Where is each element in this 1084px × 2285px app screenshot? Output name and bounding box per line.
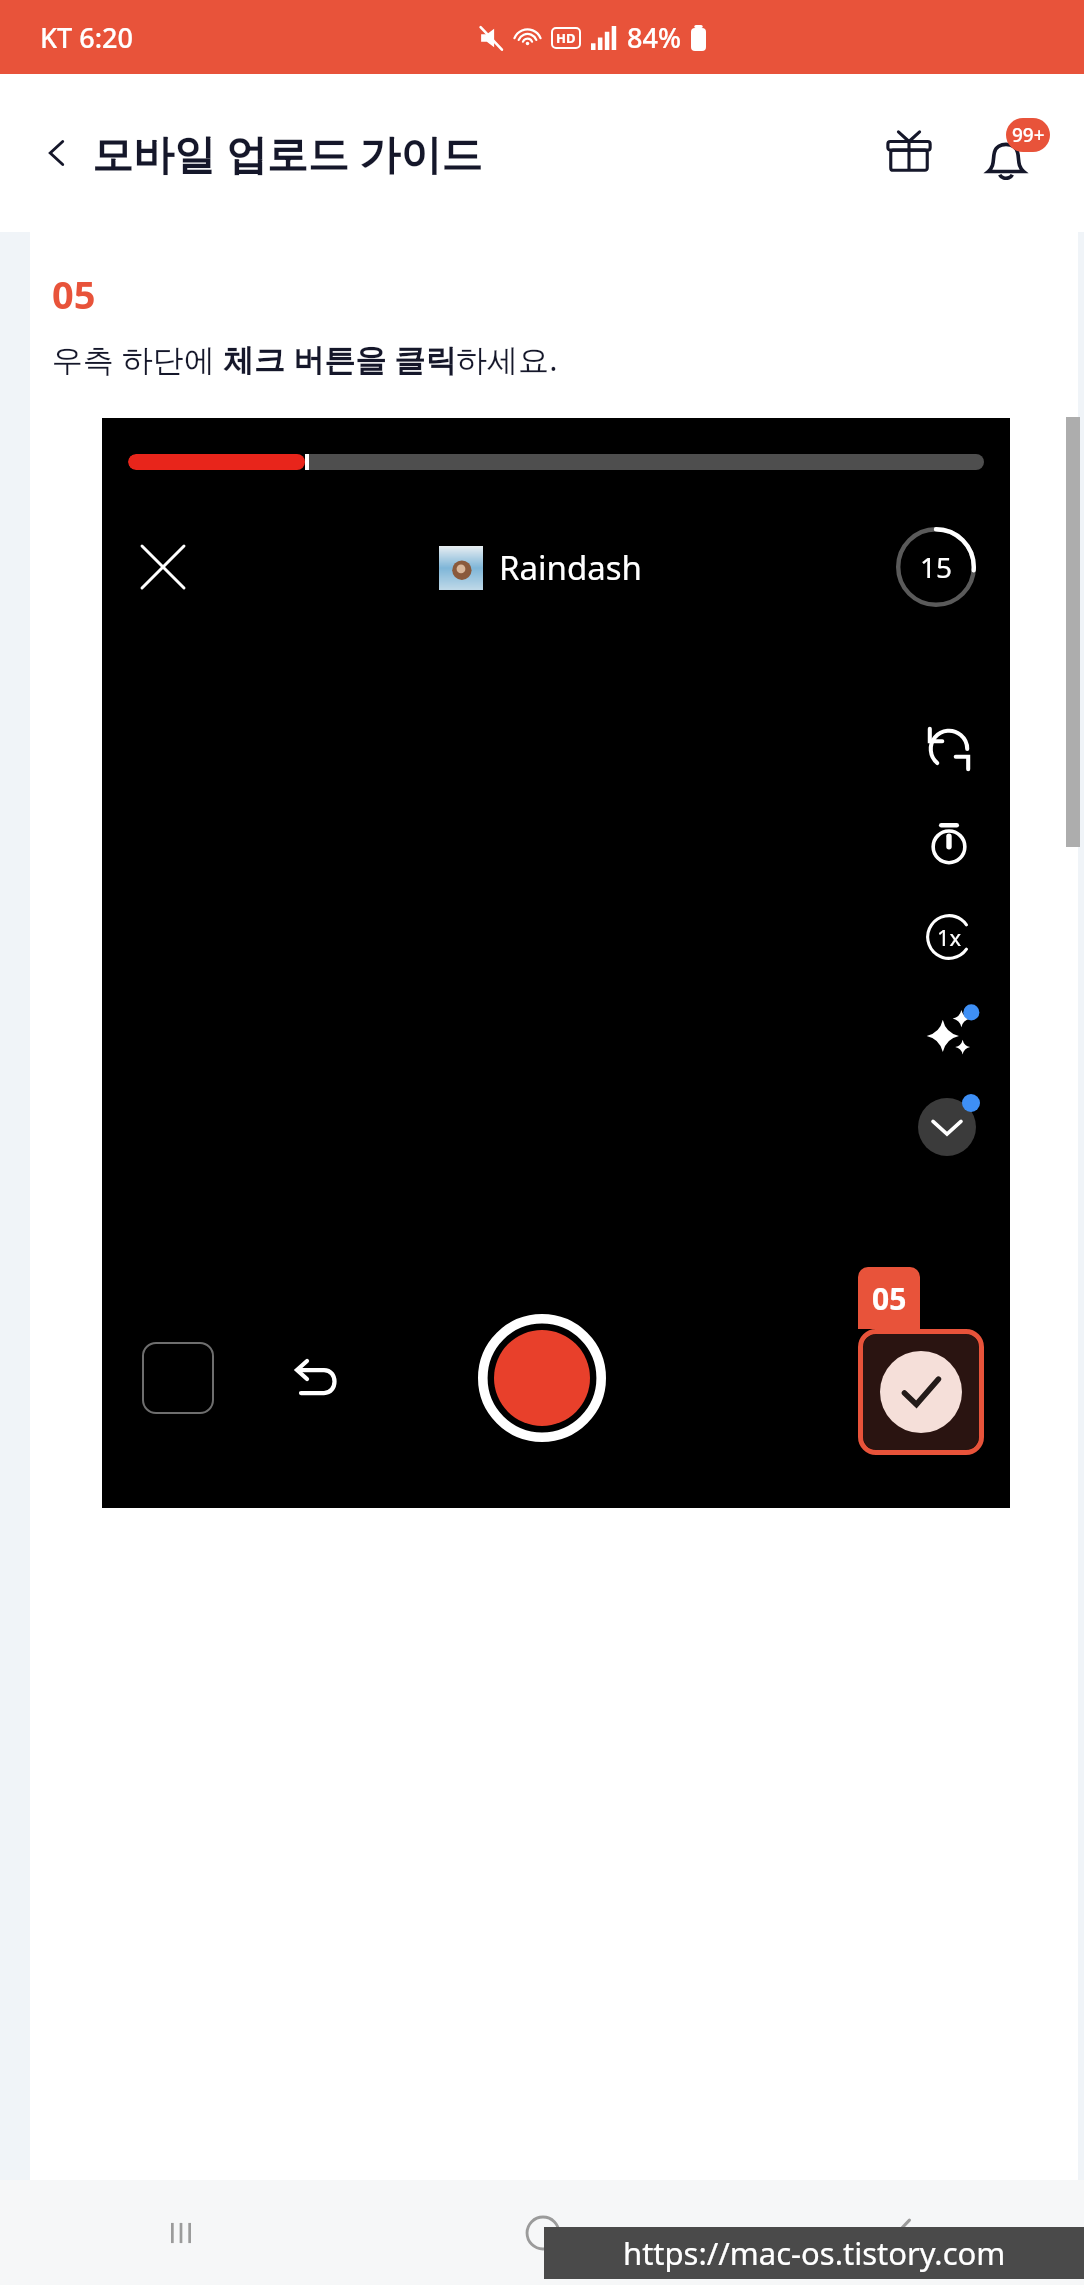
button[interactable]: Close xyxy=(142,546,184,588)
staticText: Raindash xyxy=(499,545,642,590)
button[interactable]: Back xyxy=(723,2180,1084,2285)
button[interactable]: Timer 15 seconds xyxy=(896,527,976,607)
staticText: 모바일 업로드 가이드 xyxy=(92,125,483,181)
button[interactable]: Effects xyxy=(918,1000,980,1062)
button[interactable]: Zoom 1x xyxy=(918,906,980,968)
button[interactable]: Back xyxy=(44,125,483,181)
staticText: HD xyxy=(556,29,576,47)
button[interactable]: Home xyxy=(362,2180,723,2285)
staticText: 05 xyxy=(52,268,96,320)
staticText: 84% xyxy=(627,19,681,56)
button[interactable]: Recents xyxy=(0,2180,362,2285)
staticText: 05 xyxy=(872,1278,907,1319)
staticText: 1x xyxy=(937,922,962,952)
staticText: 99+ xyxy=(1012,122,1045,148)
button[interactable]: Gifts xyxy=(882,126,936,180)
staticText: KT 6:20 xyxy=(40,19,133,56)
staticText: 15 xyxy=(920,548,953,586)
other: Back xyxy=(44,140,70,166)
button[interactable]: Undo xyxy=(290,1353,340,1403)
staticText: https://mac-os.tistory.com xyxy=(623,2232,1006,2274)
staticText: 우측 하단에 체크 버튼을 클릭하세요. xyxy=(52,338,558,380)
button[interactable]: Gallery xyxy=(142,1342,214,1414)
button[interactable]: More options xyxy=(918,1094,980,1156)
button[interactable]: Switch camera xyxy=(918,718,980,780)
button[interactable]: Timer xyxy=(918,812,980,874)
button[interactable]: Notifications xyxy=(982,122,1044,184)
button[interactable]: Done xyxy=(863,1334,979,1450)
button[interactable]: Record xyxy=(478,1314,606,1442)
